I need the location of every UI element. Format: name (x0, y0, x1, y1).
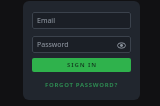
button[interactable]: Password (32, 36, 131, 53)
staticText: Password (37, 40, 69, 50)
staticText: SIGN IN (67, 61, 97, 69)
button[interactable]: Email (32, 12, 131, 29)
button[interactable]: SIGN IN (32, 58, 131, 72)
staticText: FORGOT PASSWORD? (45, 81, 118, 89)
button[interactable]: FORGOT PASSWORD? (32, 78, 131, 92)
staticText: Email (37, 16, 55, 26)
button[interactable]: Show password (116, 40, 126, 50)
